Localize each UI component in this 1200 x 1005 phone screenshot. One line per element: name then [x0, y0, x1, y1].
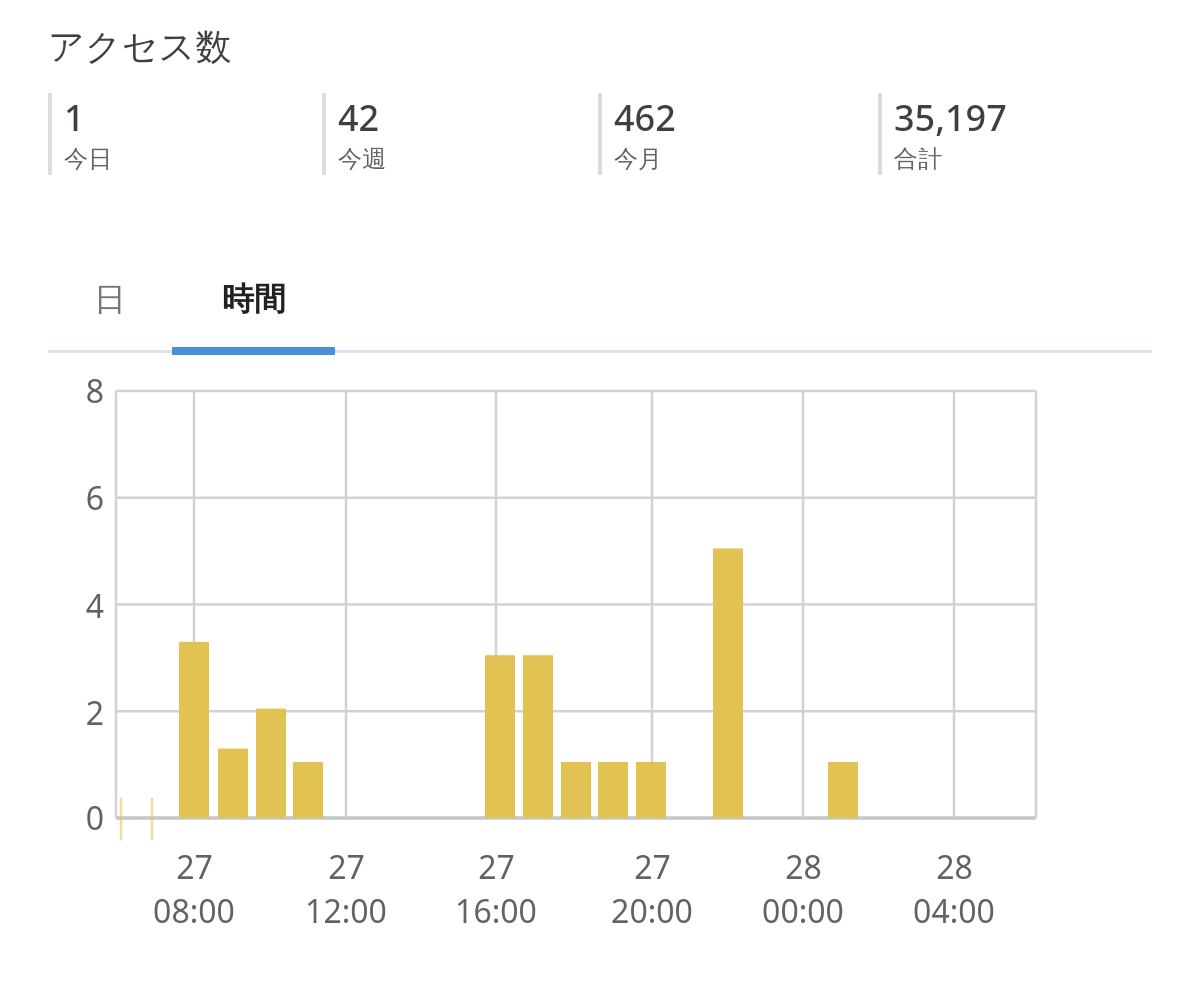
staticText: 27	[328, 845, 365, 889]
staticText: 今週	[338, 144, 386, 174]
staticText: 1	[64, 93, 85, 142]
staticText: アクセス数	[48, 24, 232, 69]
staticText: 0	[85, 796, 104, 840]
staticText: 合計	[894, 144, 942, 174]
staticText: 6	[85, 476, 104, 520]
staticText: 27	[176, 845, 213, 889]
button[interactable]: 462	[598, 93, 878, 175]
staticText: 28	[785, 845, 822, 889]
staticText: 4	[85, 584, 104, 628]
staticText: 12:00	[305, 889, 387, 933]
staticText: 今月	[614, 144, 662, 174]
staticText: 35,197	[894, 93, 1007, 142]
staticText: 2	[85, 691, 104, 735]
button[interactable]: 42	[322, 93, 598, 175]
staticText: 16:00	[455, 889, 537, 933]
button[interactable]: 35,197	[878, 93, 1158, 175]
staticText: 04:00	[913, 889, 995, 933]
staticText: 日	[94, 279, 126, 319]
staticText: 時間	[222, 279, 286, 319]
button[interactable]: 日	[48, 251, 172, 347]
staticText: 20:00	[611, 889, 693, 933]
staticText: 27	[478, 845, 515, 889]
staticText: 08:00	[153, 889, 235, 933]
staticText: 27	[634, 845, 671, 889]
staticText: 8	[85, 369, 104, 413]
button[interactable]: 時間	[172, 251, 335, 347]
button[interactable]: 1	[48, 93, 322, 175]
staticText: 28	[936, 845, 973, 889]
staticText: 42	[338, 93, 380, 142]
staticText: 462	[614, 93, 676, 142]
staticText: 今日	[64, 144, 112, 174]
staticText: 00:00	[762, 889, 844, 933]
